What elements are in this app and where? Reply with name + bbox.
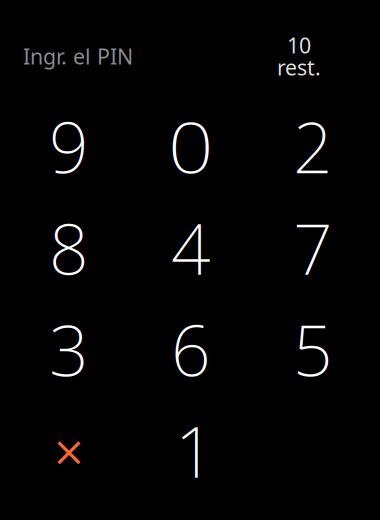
button[interactable]: 9 bbox=[8, 95, 130, 197]
button[interactable]: 1 bbox=[130, 400, 252, 501]
staticText: Ingr. el PIN bbox=[23, 42, 133, 70]
staticText: 9 bbox=[49, 100, 89, 192]
button[interactable]: 2 bbox=[252, 95, 374, 197]
button[interactable]: 4 bbox=[130, 197, 252, 298]
staticText: 3 bbox=[49, 303, 89, 395]
button[interactable]: Delete bbox=[8, 400, 130, 501]
staticText: 6 bbox=[171, 303, 211, 395]
button[interactable]: 7 bbox=[252, 197, 374, 298]
staticText: rest. bbox=[277, 53, 321, 81]
staticText: 1 bbox=[175, 405, 215, 497]
staticText: 7 bbox=[293, 202, 333, 294]
button[interactable]: 5 bbox=[252, 298, 374, 400]
staticText: 8 bbox=[49, 202, 89, 294]
button[interactable]: 3 bbox=[8, 298, 130, 400]
button[interactable]: 0 bbox=[130, 95, 252, 197]
button[interactable]: 6 bbox=[130, 298, 252, 400]
staticText: 4 bbox=[171, 202, 211, 294]
button[interactable]: 8 bbox=[8, 197, 130, 298]
staticText: 0 bbox=[171, 100, 211, 192]
staticText: 2 bbox=[293, 100, 333, 192]
staticText: 10 bbox=[287, 31, 311, 59]
staticText: 5 bbox=[293, 303, 333, 395]
